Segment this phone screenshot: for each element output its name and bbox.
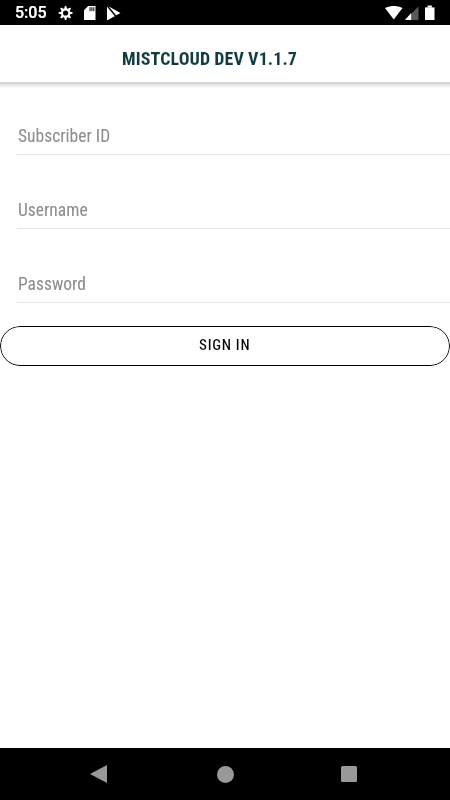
staticText: SIGN IN [199,336,251,354]
button[interactable]: Password [0,250,450,324]
staticText: MISTCLOUD DEV V1.1.7 [122,48,298,69]
button[interactable]: Recent apps [319,748,379,800]
button[interactable]: Back [68,748,128,800]
button[interactable]: Home [195,748,255,800]
staticText: Username [18,200,88,221]
button[interactable]: Username [0,176,450,250]
button[interactable]: Subscriber ID [0,102,450,176]
staticText: Subscriber ID [18,126,111,147]
staticText: 5:05 [15,3,47,22]
button[interactable]: SIGN IN [0,326,450,366]
staticText: Password [18,274,86,295]
